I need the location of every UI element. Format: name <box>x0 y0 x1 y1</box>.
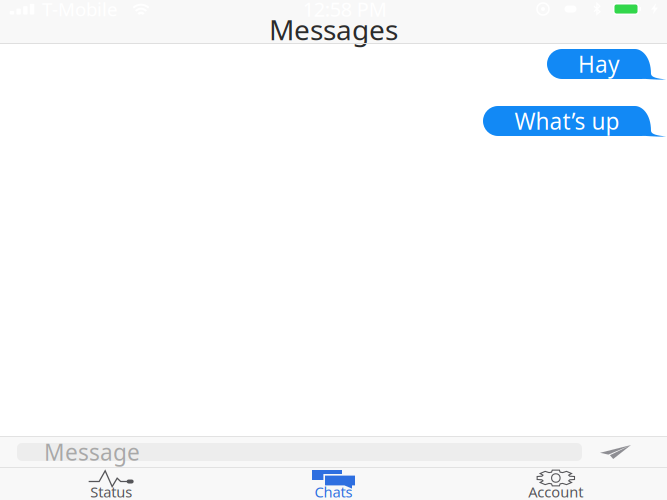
button[interactable]: Send <box>582 436 649 467</box>
staticText: Account <box>528 482 583 500</box>
staticText: What’s up <box>514 106 619 136</box>
staticText: Message <box>44 437 140 467</box>
button[interactable]: Account <box>445 467 667 500</box>
button[interactable]: Chats <box>222 467 445 500</box>
button[interactable]: Status <box>0 467 222 500</box>
staticText: Hay <box>578 49 620 79</box>
staticText: Messages <box>269 11 398 48</box>
staticText: Status <box>90 482 132 500</box>
staticText: Chats <box>314 482 352 500</box>
button[interactable]: Message <box>17 443 582 461</box>
